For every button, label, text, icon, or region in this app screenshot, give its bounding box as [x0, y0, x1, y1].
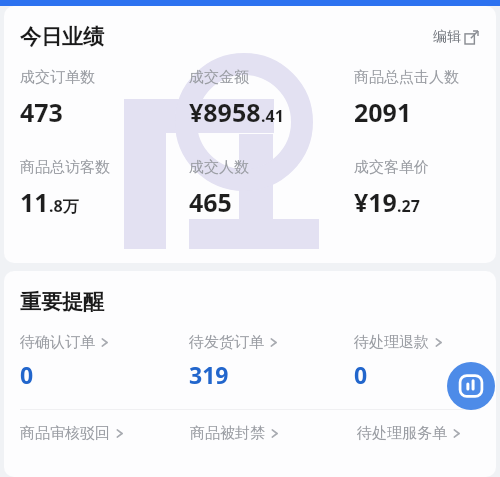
button[interactable]: 编辑	[429, 24, 482, 50]
button[interactable]: 成交订单数	[20, 68, 180, 129]
button[interactable]: Assistant	[447, 362, 495, 410]
staticText: 成交人数	[189, 158, 249, 177]
button[interactable]: 待处理退款	[354, 333, 496, 390]
staticText: ¥8958	[189, 95, 261, 129]
staticText: 商品总点击人数	[354, 68, 459, 87]
staticText: 0	[20, 359, 34, 390]
staticText: 473	[20, 95, 63, 129]
button[interactable]: 商品总点击人数	[354, 68, 496, 129]
button[interactable]: 商品被封禁	[190, 424, 279, 443]
button[interactable]: 成交金额	[189, 68, 349, 129]
staticText: 待确认订单	[20, 333, 95, 352]
staticText: 待处理退款	[354, 333, 429, 352]
staticText: 今日业绩	[20, 24, 104, 50]
button[interactable]: 成交客单价	[354, 158, 496, 219]
staticText: 成交客单价	[354, 158, 429, 177]
button[interactable]: 待发货订单	[189, 333, 339, 390]
button[interactable]: 待确认订单	[20, 333, 170, 390]
staticText: ¥19	[354, 185, 397, 219]
staticText: 成交订单数	[20, 68, 95, 87]
staticText: 商品审核驳回	[20, 424, 110, 443]
button[interactable]: 商品审核驳回	[20, 424, 124, 443]
staticText: 319	[189, 359, 229, 390]
staticText: 编辑	[433, 28, 461, 46]
button[interactable]: 成交人数	[189, 158, 349, 219]
staticText: 重要提醒	[20, 289, 104, 315]
staticText: 465	[189, 185, 232, 219]
button[interactable]: 待处理服务单	[357, 424, 461, 443]
staticText: 商品总访客数	[20, 158, 110, 177]
staticText: 0	[354, 359, 368, 390]
staticText: .8万	[49, 195, 79, 217]
staticText: 成交金额	[189, 68, 249, 87]
staticText: .41	[261, 105, 284, 127]
staticText: 2091	[354, 95, 412, 129]
staticText: 待处理服务单	[357, 424, 447, 443]
staticText: .27	[397, 195, 420, 217]
button[interactable]: 商品总访客数	[20, 158, 180, 219]
staticText: 商品被封禁	[190, 424, 265, 443]
staticText: 11	[20, 185, 49, 219]
staticText: 待发货订单	[189, 333, 264, 352]
